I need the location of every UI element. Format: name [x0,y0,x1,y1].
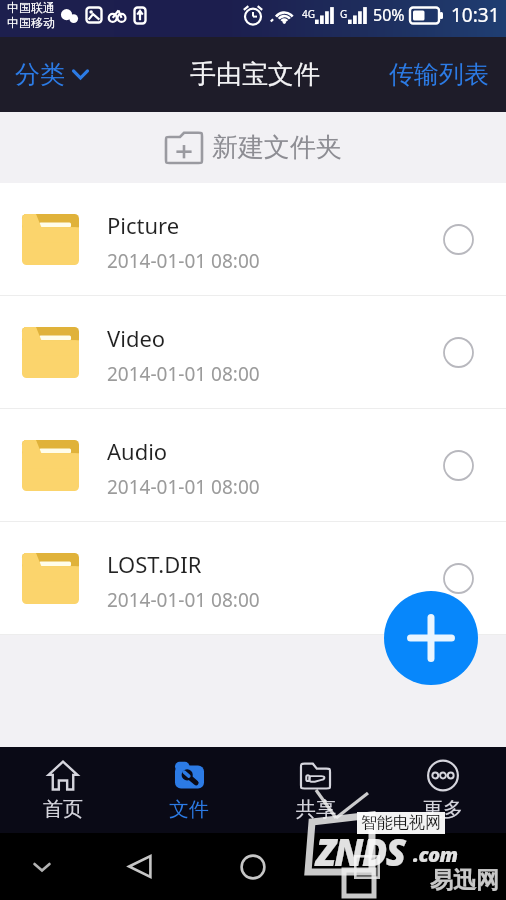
staticText: 中国移动 [7,15,55,30]
staticText: 更多 [423,797,463,821]
staticText: .com [413,841,458,868]
button[interactable]: 共享 [252,747,379,833]
button[interactable]: 首页 [0,747,126,833]
button[interactable]: 文件 [126,747,252,833]
staticText: 手由宝文件 [190,58,320,91]
staticText: 2014-01-01 08:00 [107,248,260,274]
staticText: 智能电视网 [361,813,441,833]
staticText: 2014-01-01 08:00 [107,474,260,500]
staticText: 中国联通 [7,0,55,15]
staticText: 分类 [15,59,65,90]
button[interactable]: Add [384,591,478,685]
staticText: LOST.DIR [107,549,202,579]
staticText: 2014-01-01 08:00 [107,361,260,387]
staticText: 传输列表 [389,59,489,90]
button[interactable]: 传输列表 [375,49,506,100]
staticText: 10:31 [451,2,500,28]
button[interactable]: Back [126,833,153,900]
button[interactable]: Audio [0,409,506,522]
staticText: 易迅网 [430,866,499,895]
staticText: 新建文件夹 [212,131,342,164]
staticText: 4G [302,7,315,21]
staticText: 共享 [296,797,336,821]
button[interactable]: Picture [0,183,506,296]
staticText: Picture [107,210,180,240]
button[interactable]: Recent apps [353,833,380,900]
staticText: Video [107,323,166,353]
staticText: 2014-01-01 08:00 [107,587,260,613]
staticText: 50% [373,4,405,26]
button[interactable]: LOST.DIR [0,522,506,635]
button[interactable]: 新建文件夹 [0,112,506,183]
staticText: ZNDS [316,826,405,876]
button[interactable]: Video [0,296,506,409]
staticText: 首页 [43,797,83,821]
staticText: Audio [107,436,168,466]
button[interactable]: 分类 [10,49,94,100]
button[interactable]: 更多 [379,747,506,833]
button[interactable]: Hide keyboard [28,833,55,900]
staticText: 文件 [169,797,209,821]
button[interactable]: Home [239,833,266,900]
staticText: G [340,7,348,21]
